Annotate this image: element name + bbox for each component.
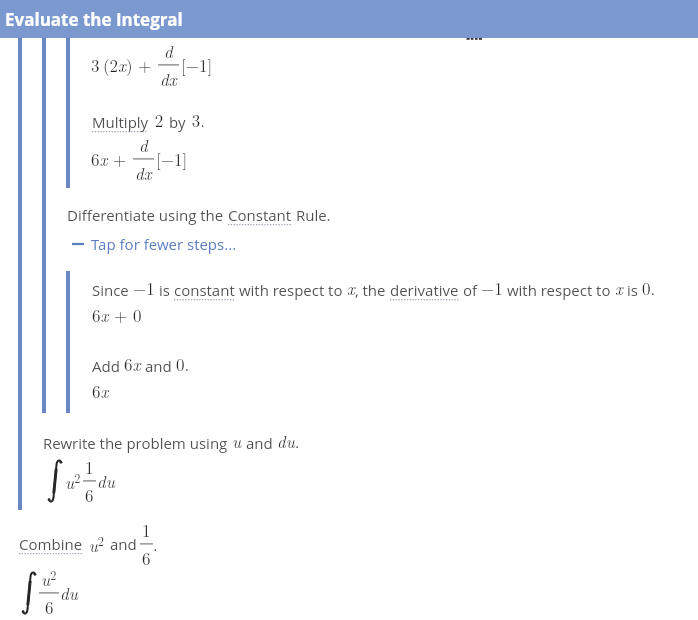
staticText: Combine [19,534,83,554]
staticText: d [164,39,173,63]
staticText: u2 [65,469,81,494]
staticText: u [232,429,242,453]
staticText: 6x [124,352,141,376]
staticText: constant [174,280,235,300]
staticText: du [60,581,78,605]
staticText: 3 (2x) + [91,53,152,77]
button[interactable]: Evaluate the Integral [0,0,698,38]
staticText: dx [160,67,177,91]
staticText: 6x + 0 [92,303,142,327]
staticText: [−1] [156,147,188,171]
staticText: Since [92,280,133,300]
staticText: and [242,433,277,453]
staticText: dx [135,161,152,185]
staticText: d [139,133,148,157]
staticText: 0. [642,276,656,300]
staticText: 0. [176,352,190,376]
staticText: 1 [85,455,94,479]
staticText: and [141,356,176,376]
staticText: du. [277,429,300,453]
staticText: . [153,532,158,556]
staticText: x [347,276,355,300]
staticText: Multiply [92,112,149,132]
staticText: du [97,469,115,493]
staticText: with respect to [503,280,615,300]
staticText: −1 [481,276,503,300]
staticText: Evaluate the Integral [5,8,183,31]
button[interactable]: Tap for fewer steps [71,234,237,254]
staticText: and [110,534,137,554]
staticText: Tap for fewer steps... [91,234,237,254]
staticText: Constant [228,205,292,225]
staticText: 6 [142,546,151,570]
staticText: u2 [41,566,57,591]
staticText: Add [92,356,124,376]
staticText: Differentiate using the [67,205,228,225]
staticText: by [169,112,186,132]
staticText: Rewrite the problem using [43,433,232,453]
staticText: 2 [149,108,169,132]
staticText: is [623,280,642,300]
staticText: 6 [45,595,54,619]
staticText: is [155,280,174,300]
staticText: with respect to [235,280,347,300]
staticText: 6x + [91,147,127,171]
staticText: 6 [85,483,94,507]
staticText: of [459,280,481,300]
staticText: 3. [186,108,205,132]
staticText: x [615,276,623,300]
staticText: u2 [83,532,110,557]
staticText: 6x [92,379,109,403]
staticText: 1 [142,518,151,542]
staticText: [−1] [181,53,213,77]
staticText: Rule. [292,205,331,225]
staticText: , the [355,280,390,300]
staticText: −1 [133,276,155,300]
staticText: derivative [390,280,459,300]
